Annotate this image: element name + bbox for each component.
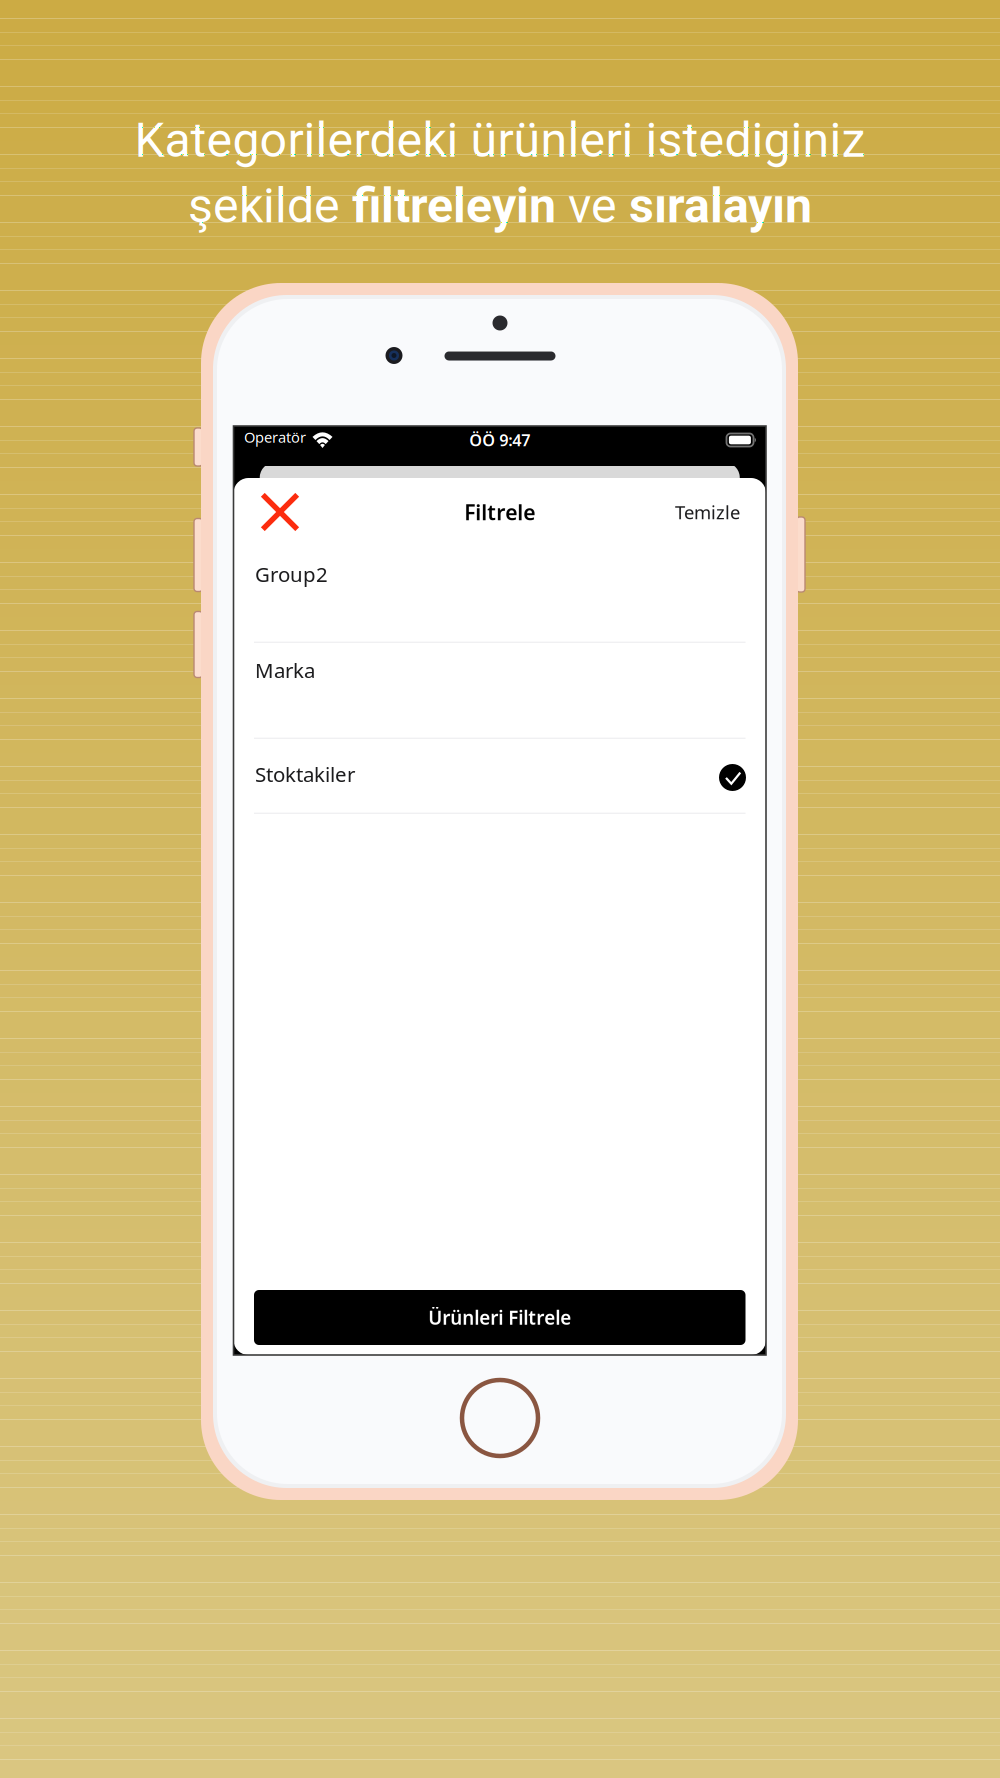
button[interactable]: Group2 — [233, 547, 766, 643]
staticText: Filtrele — [464, 498, 535, 526]
button[interactable]: Ürünleri Filtrele — [254, 1290, 745, 1345]
staticText: şekilde — [188, 178, 352, 234]
staticText: ve — [556, 178, 629, 234]
button[interactable]: Marka — [233, 643, 766, 739]
staticText: ÖÖ 9:47 — [469, 429, 530, 451]
staticText: Ürünleri Filtrele — [428, 1305, 571, 1330]
button[interactable]: Temizle — [622, 483, 740, 541]
staticText: sıralayın — [629, 178, 812, 234]
staticText: Group2 — [255, 560, 328, 588]
staticText: Marka — [255, 656, 315, 684]
staticText: Temizle — [675, 499, 740, 525]
staticText: Stoktakiler — [255, 760, 355, 788]
button[interactable]: Stoktakiler — [233, 739, 766, 814]
staticText: filtreleyin — [352, 178, 556, 234]
staticText: Kategorilerdeki ürünleri istediginiz — [134, 112, 865, 169]
button[interactable]: Close — [246, 482, 314, 542]
staticText: Operatör — [244, 427, 306, 447]
